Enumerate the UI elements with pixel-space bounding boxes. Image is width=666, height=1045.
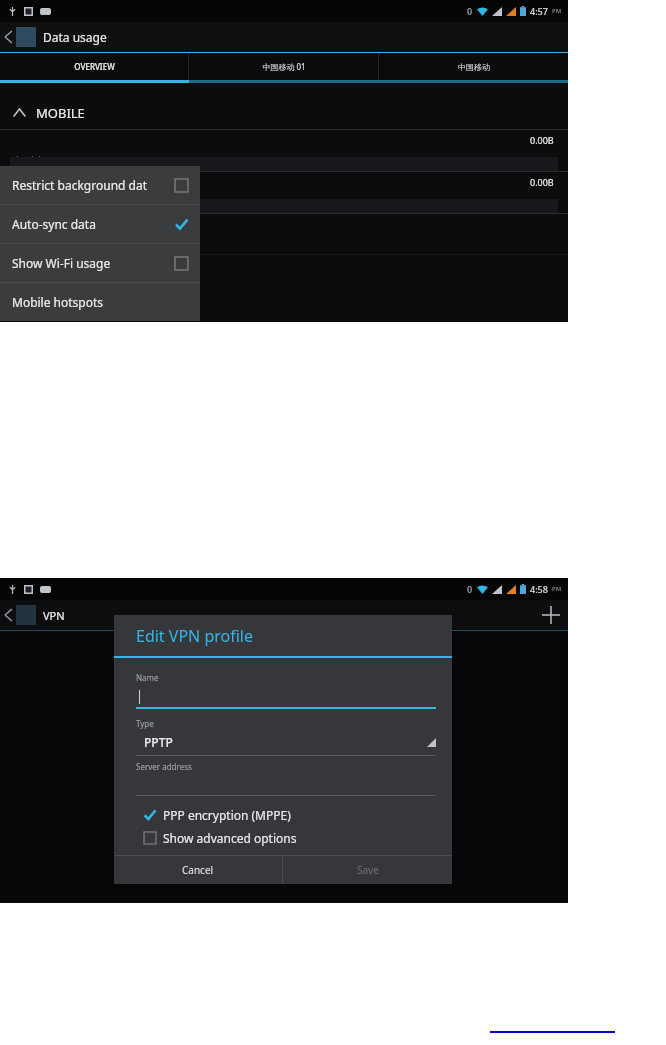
staticText: Server address: [136, 761, 192, 772]
button[interactable]: Show advanced options: [136, 828, 436, 848]
button[interactable]: 0.00B: [0, 172, 568, 213]
button[interactable]: MOBILE: [0, 96, 568, 129]
button[interactable]: Auto-sync data: [0, 205, 200, 243]
staticText: Type: [136, 718, 154, 729]
button[interactable]: Save: [283, 856, 452, 884]
staticText: 中国移动: [458, 62, 490, 72]
button[interactable]: Back: [0, 22, 568, 52]
staticText: 4:58: [530, 583, 548, 595]
button[interactable]: OVERVIEW: [0, 53, 188, 80]
staticText: 0: [467, 5, 473, 17]
staticText: PM: [552, 585, 562, 593]
staticText: Edit VPN profile: [136, 625, 253, 647]
button[interactable]: PPP encryption (MPPE): [136, 805, 436, 825]
staticText: VPN: [43, 608, 65, 623]
staticText: 0.00B: [530, 176, 554, 188]
button[interactable]: Show Wi-Fi usage: [0, 244, 200, 282]
staticText: 0: [467, 583, 473, 595]
button[interactable]: Restrict background dat: [0, 166, 200, 204]
staticText: Data usage: [43, 29, 107, 45]
staticText: Name: [136, 672, 159, 683]
button[interactable]: Mobile hotspots: [0, 283, 200, 321]
button[interactable]: 中国移动 01: [0, 130, 568, 171]
staticText: Save: [357, 863, 379, 877]
staticText: PPP encryption (MPPE): [163, 807, 291, 823]
staticText: Show Wi-Fi usage: [12, 255, 175, 271]
other: Back: [5, 31, 12, 43]
staticText: 4:57: [530, 5, 548, 17]
button[interactable]: Cancel: [114, 856, 282, 884]
staticText: 0.00B: [530, 134, 554, 146]
staticText: PM: [552, 7, 562, 15]
staticText: Auto-sync data: [12, 216, 175, 232]
other: Back: [5, 609, 12, 621]
staticText: Show advanced options: [163, 830, 297, 846]
button[interactable]: 中国移动 01: [189, 53, 378, 80]
staticText: 中国移动 01: [262, 61, 306, 72]
staticText: Restrict background dat: [12, 177, 175, 193]
button[interactable]: PPTP: [136, 734, 436, 750]
staticText: OVERVIEW: [74, 61, 115, 72]
staticText: 中国移动 01: [14, 155, 52, 165]
button[interactable]: Add VPN profile: [534, 600, 568, 630]
staticText: Mobile hotspots: [12, 294, 188, 310]
button[interactable]: 中国移动: [379, 53, 568, 80]
staticText: Cancel: [182, 863, 214, 877]
staticText: PPTP: [144, 734, 173, 750]
staticText: MOBILE: [36, 104, 85, 122]
